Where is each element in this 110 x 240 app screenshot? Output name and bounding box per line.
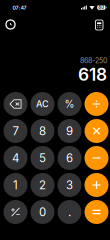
staticText: %: [64, 98, 74, 110]
staticText: 5: [39, 151, 46, 165]
staticText: 3: [66, 178, 73, 192]
staticText: 0: [39, 205, 46, 219]
staticText: 1: [13, 178, 18, 192]
button[interactable]: .: [56, 198, 83, 225]
staticText: 07:47: [12, 5, 26, 11]
button[interactable]: 0: [29, 198, 56, 225]
staticText: 868-250: [80, 56, 107, 65]
button[interactable]: Plus minus: [2, 198, 29, 225]
staticText: .: [68, 205, 71, 219]
staticText: 6: [66, 151, 73, 165]
button[interactable]: %: [56, 90, 83, 117]
staticText: AC: [36, 98, 49, 109]
button[interactable]: 2: [29, 171, 56, 198]
button[interactable]: Multiply: [83, 117, 110, 144]
button[interactable]: Add: [83, 171, 110, 198]
button[interactable]: 6: [56, 144, 83, 171]
staticText: 8: [39, 124, 46, 138]
button[interactable]: Subtract: [83, 144, 110, 171]
button[interactable]: 8: [29, 117, 56, 144]
button[interactable]: 3: [56, 171, 83, 198]
button[interactable]: 9: [56, 117, 83, 144]
button[interactable]: 7: [2, 117, 29, 144]
button[interactable]: Calculator: [89, 15, 109, 35]
button[interactable]: History: [0, 14, 20, 34]
button[interactable]: 4: [2, 144, 29, 171]
staticText: 4: [12, 151, 19, 165]
button[interactable]: Delete: [2, 90, 29, 117]
button[interactable]: Equals: [83, 198, 110, 225]
button[interactable]: Divide: [83, 90, 110, 117]
button[interactable]: 5: [29, 144, 56, 171]
staticText: 80: [98, 5, 104, 10]
staticText: 7: [12, 124, 18, 138]
staticText: 618: [78, 64, 107, 85]
staticText: 9: [66, 124, 73, 138]
staticText: 2: [39, 178, 46, 192]
button[interactable]: AC: [29, 90, 56, 117]
button[interactable]: 1: [2, 171, 29, 198]
